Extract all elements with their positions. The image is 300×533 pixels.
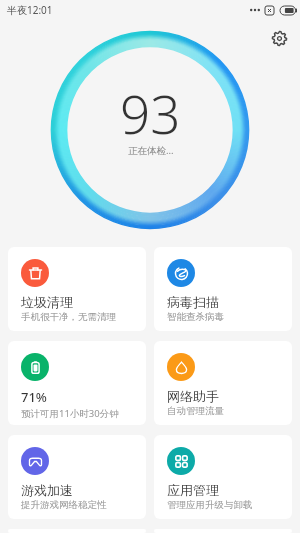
button[interactable]: Settings <box>265 24 293 52</box>
button[interactable]: 垃圾清理 <box>8 247 146 331</box>
staticText: 提升游戏网络稳定性 <box>21 499 107 511</box>
staticText: 预计可用11小时30分钟 <box>21 407 119 420</box>
staticText: 手机很干净，无需清理 <box>21 311 116 323</box>
staticText: 93 <box>120 77 181 149</box>
staticText: 智能查杀病毒 <box>167 311 224 323</box>
button[interactable]: 网络助手 <box>154 341 292 425</box>
button[interactable]: 游戏加速 <box>8 435 146 519</box>
staticText: 游戏加速 <box>21 482 73 498</box>
staticText: 自动管理流量 <box>167 405 224 417</box>
staticText: 应用管理 <box>167 482 219 498</box>
button[interactable]: 应用管理 <box>154 435 292 519</box>
staticText: 正在体检... <box>128 144 174 157</box>
staticText: 网络助手 <box>167 388 219 404</box>
staticText: 管理应用升级与卸载 <box>167 499 253 511</box>
staticText: 半夜12:01 <box>7 3 53 17</box>
staticText: 71% <box>21 388 47 406</box>
button[interactable]: 病毒扫描 <box>154 247 292 331</box>
staticText: 病毒扫描 <box>167 294 219 310</box>
staticText: 垃圾清理 <box>21 294 73 310</box>
button[interactable]: 71% <box>8 341 146 425</box>
